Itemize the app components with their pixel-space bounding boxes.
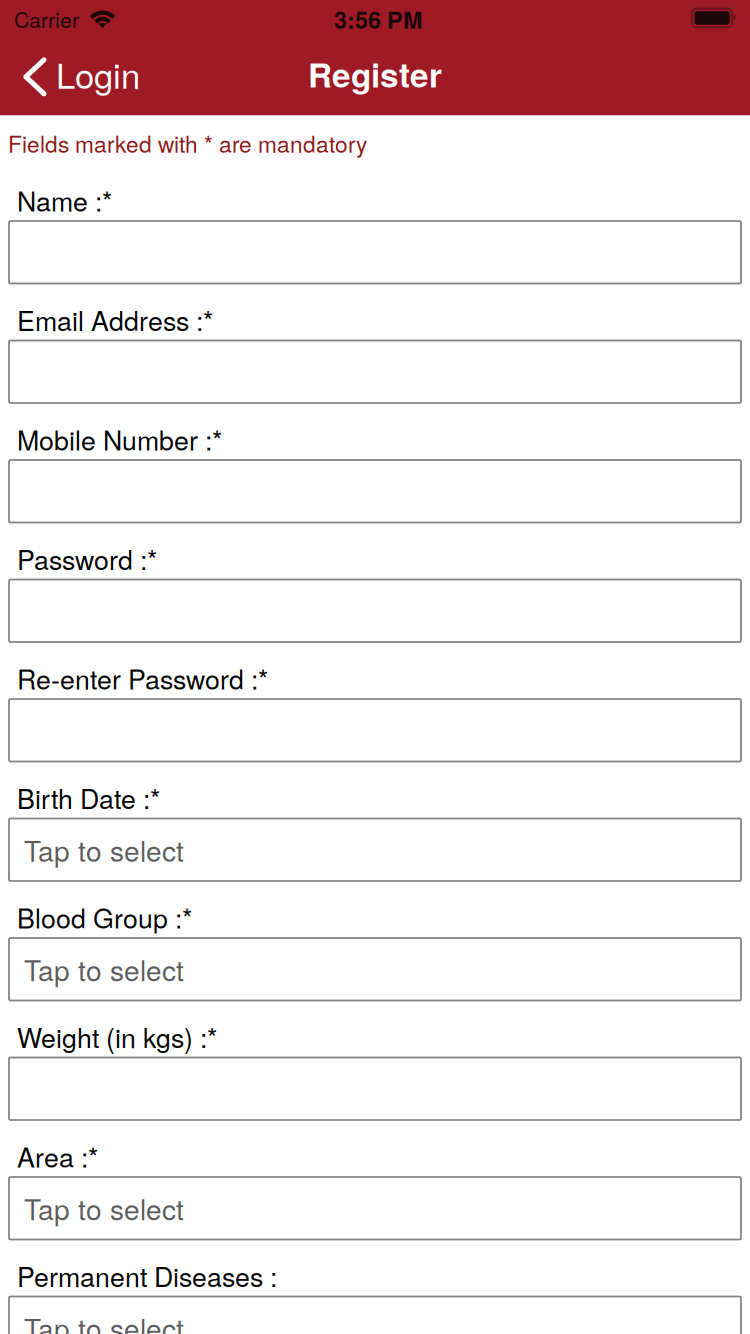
staticText: Login (56, 49, 140, 99)
button[interactable]: Login (0, 40, 750, 115)
staticText: Tap to select (24, 1188, 184, 1228)
button[interactable]: Email Address :* (0, 340, 750, 403)
staticText: Re-enter Password :* (17, 659, 268, 697)
staticText: Tap to select (24, 1308, 184, 1334)
button[interactable]: Blood Group :* (0, 938, 750, 1000)
staticText: Mobile Number :* (17, 420, 222, 458)
button[interactable]: Mobile Number :* (0, 460, 750, 522)
staticText: Fields marked with * are mandatory (8, 127, 367, 159)
staticText: Tap to select (24, 949, 184, 989)
staticText: Area :* (17, 1137, 98, 1175)
staticText: Weight (in kgs) :* (17, 1017, 217, 1056)
button[interactable]: Password :* (0, 579, 750, 642)
staticText: Blood Group :* (17, 898, 192, 936)
staticText: Permanent Diseases : (17, 1256, 277, 1295)
button[interactable]: Re-enter Password :* (0, 699, 750, 761)
button[interactable]: Weight (in kgs) :* (0, 1057, 750, 1120)
button[interactable]: Permanent Diseases : (0, 1296, 750, 1334)
staticText: Name :* (17, 181, 112, 219)
button[interactable]: Birth Date :* (0, 818, 750, 881)
staticText: Email Address :* (17, 300, 213, 339)
staticText: Password :* (17, 539, 157, 578)
staticText: Carrier (14, 3, 79, 34)
staticText: 3:56 PM (334, 2, 422, 36)
button[interactable]: Area :* (0, 1177, 750, 1239)
staticText: Tap to select (24, 830, 184, 870)
staticText: Register (308, 50, 442, 98)
staticText: Birth Date :* (17, 778, 160, 817)
button[interactable]: Name :* (0, 221, 750, 283)
